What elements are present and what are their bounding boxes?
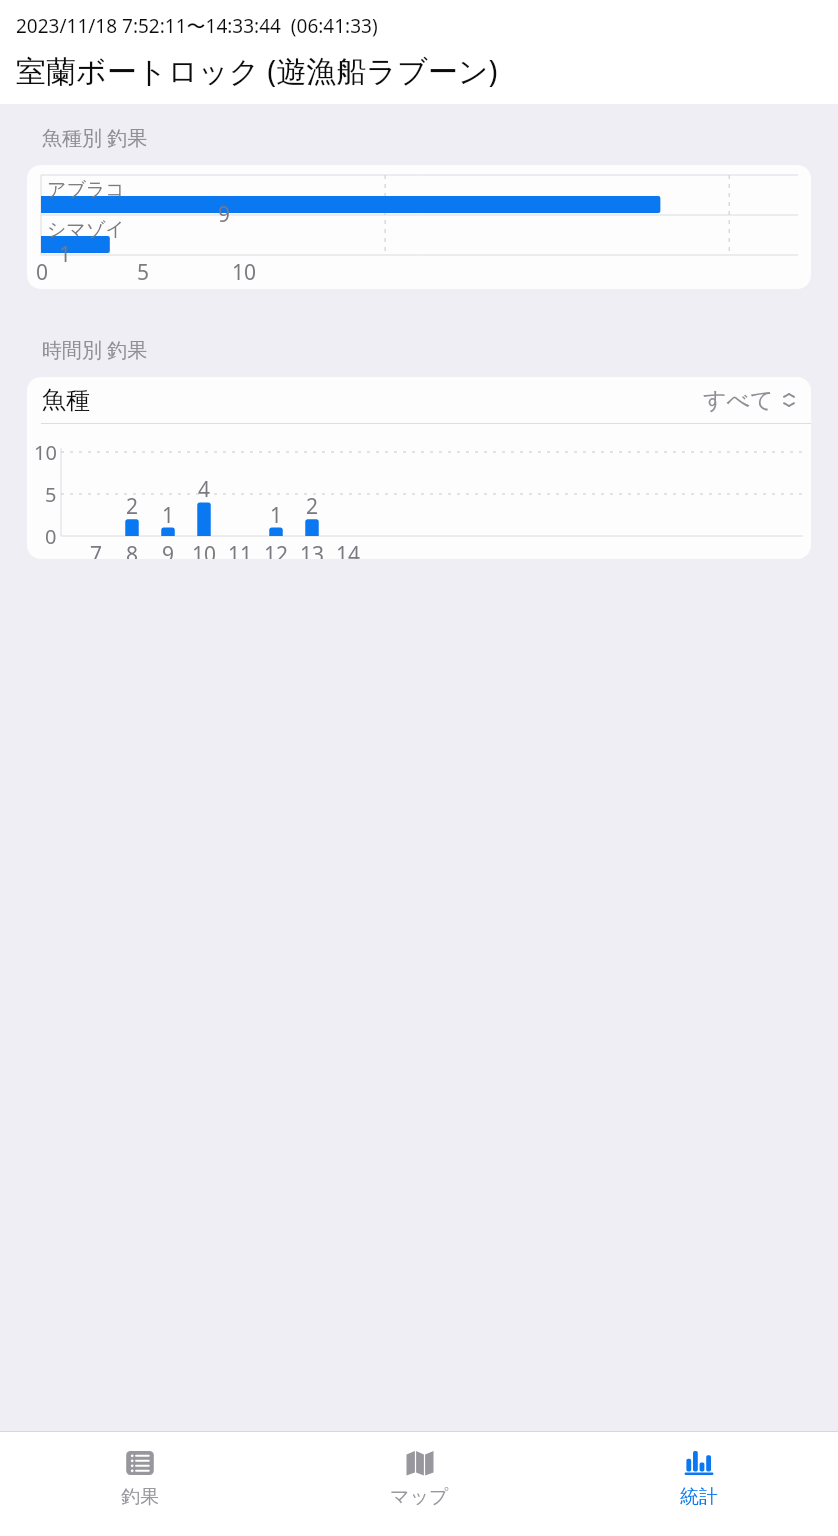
staticText: 7: [90, 540, 103, 559]
staticText: 4: [198, 475, 211, 504]
button[interactable]: 釣果: [0, 1432, 280, 1536]
staticText: 統計: [680, 1485, 718, 1509]
staticText: 室蘭ボートロック (遊漁船ラブーン): [16, 50, 498, 91]
staticText: 14: [336, 540, 361, 559]
staticText: 9: [218, 200, 231, 229]
button[interactable]: アブラコ: [27, 165, 811, 289]
staticText: 0: [45, 523, 57, 550]
staticText: 0: [36, 258, 49, 287]
button[interactable]: 統計: [559, 1432, 838, 1536]
staticText: 1: [270, 501, 283, 530]
staticText: 10: [192, 540, 217, 559]
staticText: 2023/11/18 7:52:11〜14:33:44 (06:41:33): [16, 13, 378, 39]
staticText: 8: [126, 540, 139, 559]
staticText: 時間別 釣果: [42, 336, 148, 363]
staticText: 10: [232, 258, 257, 287]
staticText: 5: [137, 258, 150, 287]
staticText: 2: [306, 492, 319, 521]
staticText: 魚種別 釣果: [42, 124, 148, 151]
staticText: 2: [126, 492, 139, 521]
staticText: アブラコ: [47, 178, 125, 202]
staticText: マップ: [390, 1485, 449, 1509]
staticText: すべて: [703, 386, 774, 415]
staticText: 13: [300, 540, 325, 559]
other: Select species: [782, 390, 796, 410]
staticText: 魚種: [42, 385, 90, 415]
button[interactable]: マップ: [280, 1432, 559, 1536]
button[interactable]: 魚種: [27, 377, 811, 423]
staticText: 1: [162, 501, 175, 530]
staticText: 9: [162, 540, 175, 559]
staticText: 12: [264, 540, 289, 559]
staticText: 10: [34, 439, 57, 466]
staticText: シマゾイ: [47, 218, 125, 242]
staticText: 5: [45, 481, 57, 508]
staticText: 釣果: [121, 1485, 159, 1509]
staticText: 11: [228, 540, 253, 559]
staticText: 1: [59, 240, 72, 269]
